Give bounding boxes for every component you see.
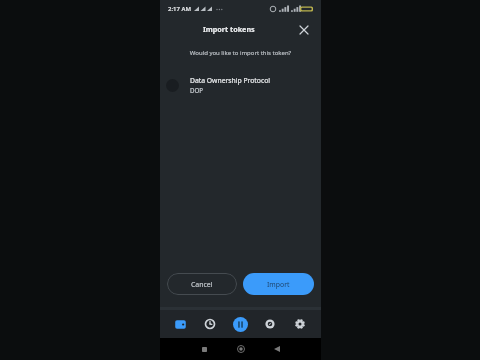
button[interactable]: Wallet bbox=[166, 310, 195, 338]
button[interactable]: Recents bbox=[197, 342, 211, 356]
staticText: Import tokens bbox=[203, 24, 255, 34]
button[interactable]: Home bbox=[234, 342, 248, 356]
button[interactable]: Discover bbox=[255, 310, 285, 338]
staticText: DOP bbox=[190, 86, 204, 94]
button[interactable]: Data Ownership Protocol bbox=[166, 74, 315, 96]
staticText: Data Ownership Protocol bbox=[190, 76, 271, 85]
staticText: Would you like to import this token? bbox=[160, 49, 321, 57]
button[interactable]: Import bbox=[243, 273, 314, 295]
button[interactable]: Swap bbox=[225, 310, 255, 338]
button[interactable]: Back bbox=[270, 342, 284, 356]
staticText: Cancel bbox=[191, 280, 213, 289]
button[interactable]: Settings bbox=[285, 310, 315, 338]
staticText: 2:17 AM bbox=[168, 5, 191, 13]
button[interactable]: History bbox=[195, 310, 225, 338]
staticText: Import bbox=[267, 280, 290, 289]
button[interactable]: Close bbox=[297, 23, 311, 37]
button[interactable]: Cancel bbox=[167, 273, 237, 295]
